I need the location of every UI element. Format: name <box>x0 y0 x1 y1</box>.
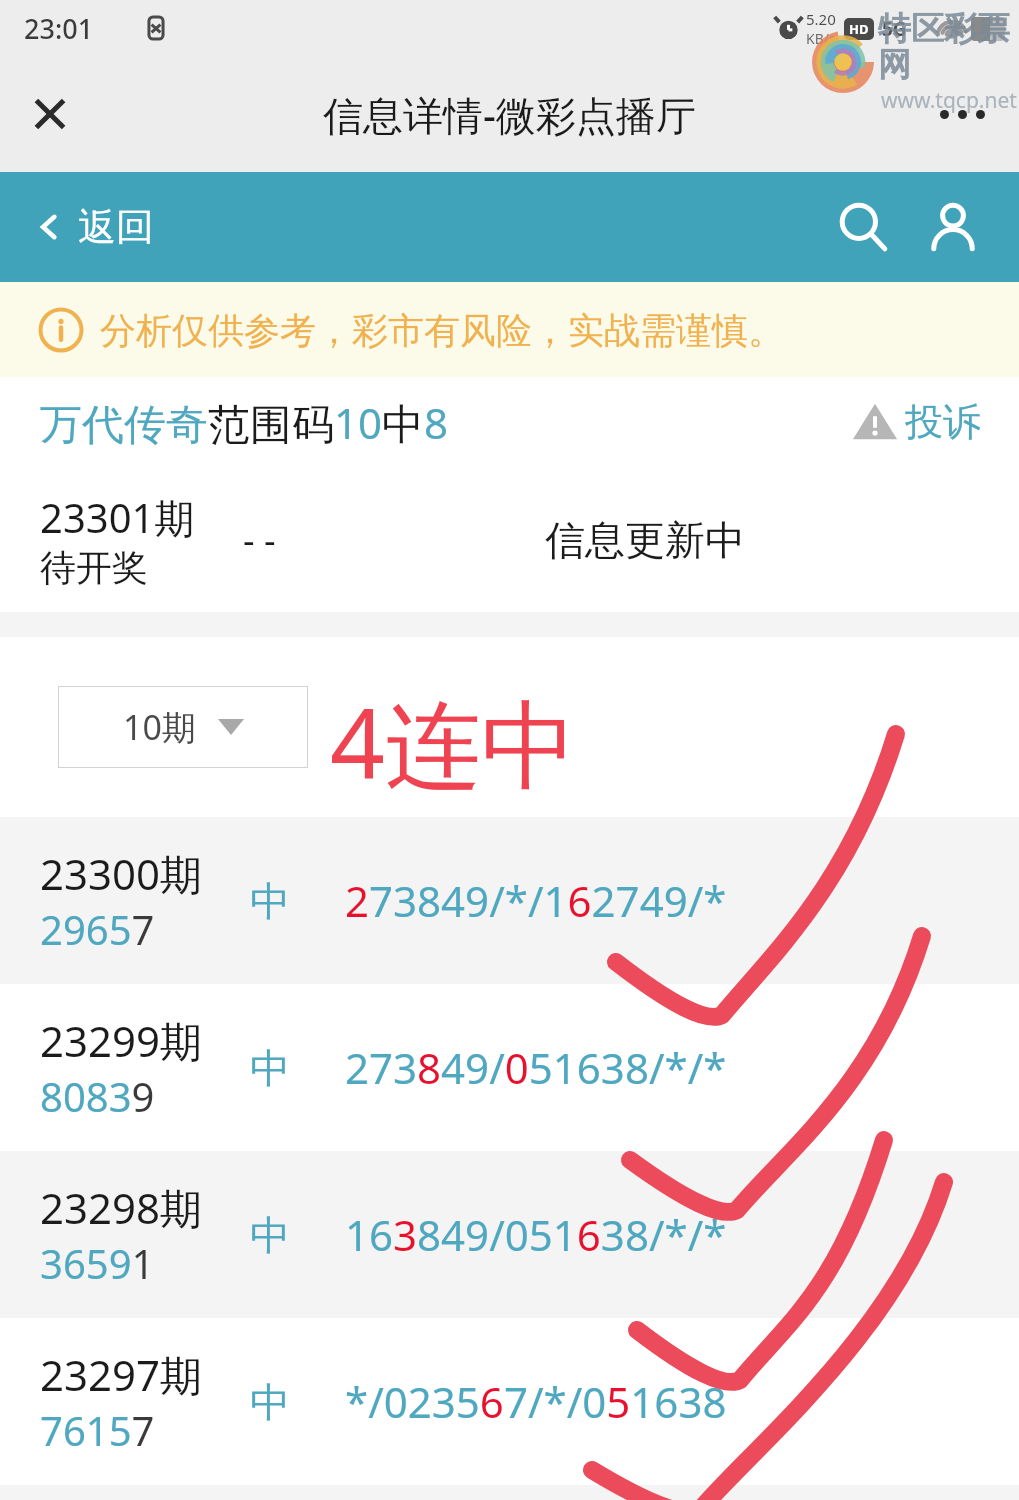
staticText: 76157 <box>40 1403 155 1457</box>
staticText: - - <box>243 515 276 564</box>
staticText: 信息更新中 <box>545 515 745 565</box>
staticText: 中 <box>250 1043 290 1093</box>
staticText: 返回 <box>78 203 154 251</box>
button[interactable]: 返回 <box>34 203 154 251</box>
staticText: 23301期 <box>40 490 195 545</box>
staticText: 29657 <box>40 902 155 956</box>
button[interactable]: Profile <box>915 189 991 265</box>
button[interactable]: 10期 <box>58 686 308 768</box>
staticText: 273849/*/162749/* <box>345 872 727 929</box>
staticText: 23:01 <box>24 10 94 47</box>
staticText: 5G <box>882 16 907 42</box>
staticText: 10期 <box>123 704 196 750</box>
button[interactable]: More options <box>927 79 997 149</box>
staticText: 23297期 <box>40 1346 203 1403</box>
staticText: 163849/051638/*/* <box>345 1206 727 1263</box>
staticText: */023567/*/051638 <box>345 1373 727 1430</box>
staticText: 36591 <box>40 1236 155 1290</box>
staticText: 投诉 <box>905 398 981 446</box>
button[interactable]: 23299期 <box>0 984 1019 1151</box>
staticText: 中 <box>250 876 290 926</box>
staticText: 23298期 <box>40 1179 203 1236</box>
button[interactable]: 23297期 <box>0 1318 1019 1485</box>
button[interactable]: Search <box>825 189 901 265</box>
staticText: 中 <box>250 1210 290 1260</box>
staticText: 4连中 <box>330 676 577 807</box>
button[interactable]: Close <box>18 82 82 146</box>
staticText: 特区彩票网 <box>878 8 1019 86</box>
staticText: 分析仅供参考，彩市有风险，实战需谨慎。 <box>100 308 784 353</box>
button[interactable]: 投诉 <box>851 398 981 446</box>
staticText: 中 <box>250 1377 290 1427</box>
staticText: www.tqcp.net <box>881 86 1017 115</box>
staticText: 万代传奇范围码10中8 <box>40 394 449 451</box>
staticText: 信息详情-微彩点播厅 <box>323 87 696 142</box>
staticText: HD <box>849 20 869 38</box>
button[interactable]: 23300期 <box>0 817 1019 984</box>
staticText: KB/s <box>806 29 836 48</box>
staticText: 273849/051638/*/* <box>345 1039 727 1096</box>
button[interactable]: 23298期 <box>0 1151 1019 1318</box>
staticText: 待开奖 <box>40 545 148 590</box>
staticText: 23299期 <box>40 1012 203 1069</box>
staticText: 23300期 <box>40 845 203 902</box>
staticText: 5.20 <box>806 9 836 29</box>
staticText: 80839 <box>40 1069 155 1123</box>
